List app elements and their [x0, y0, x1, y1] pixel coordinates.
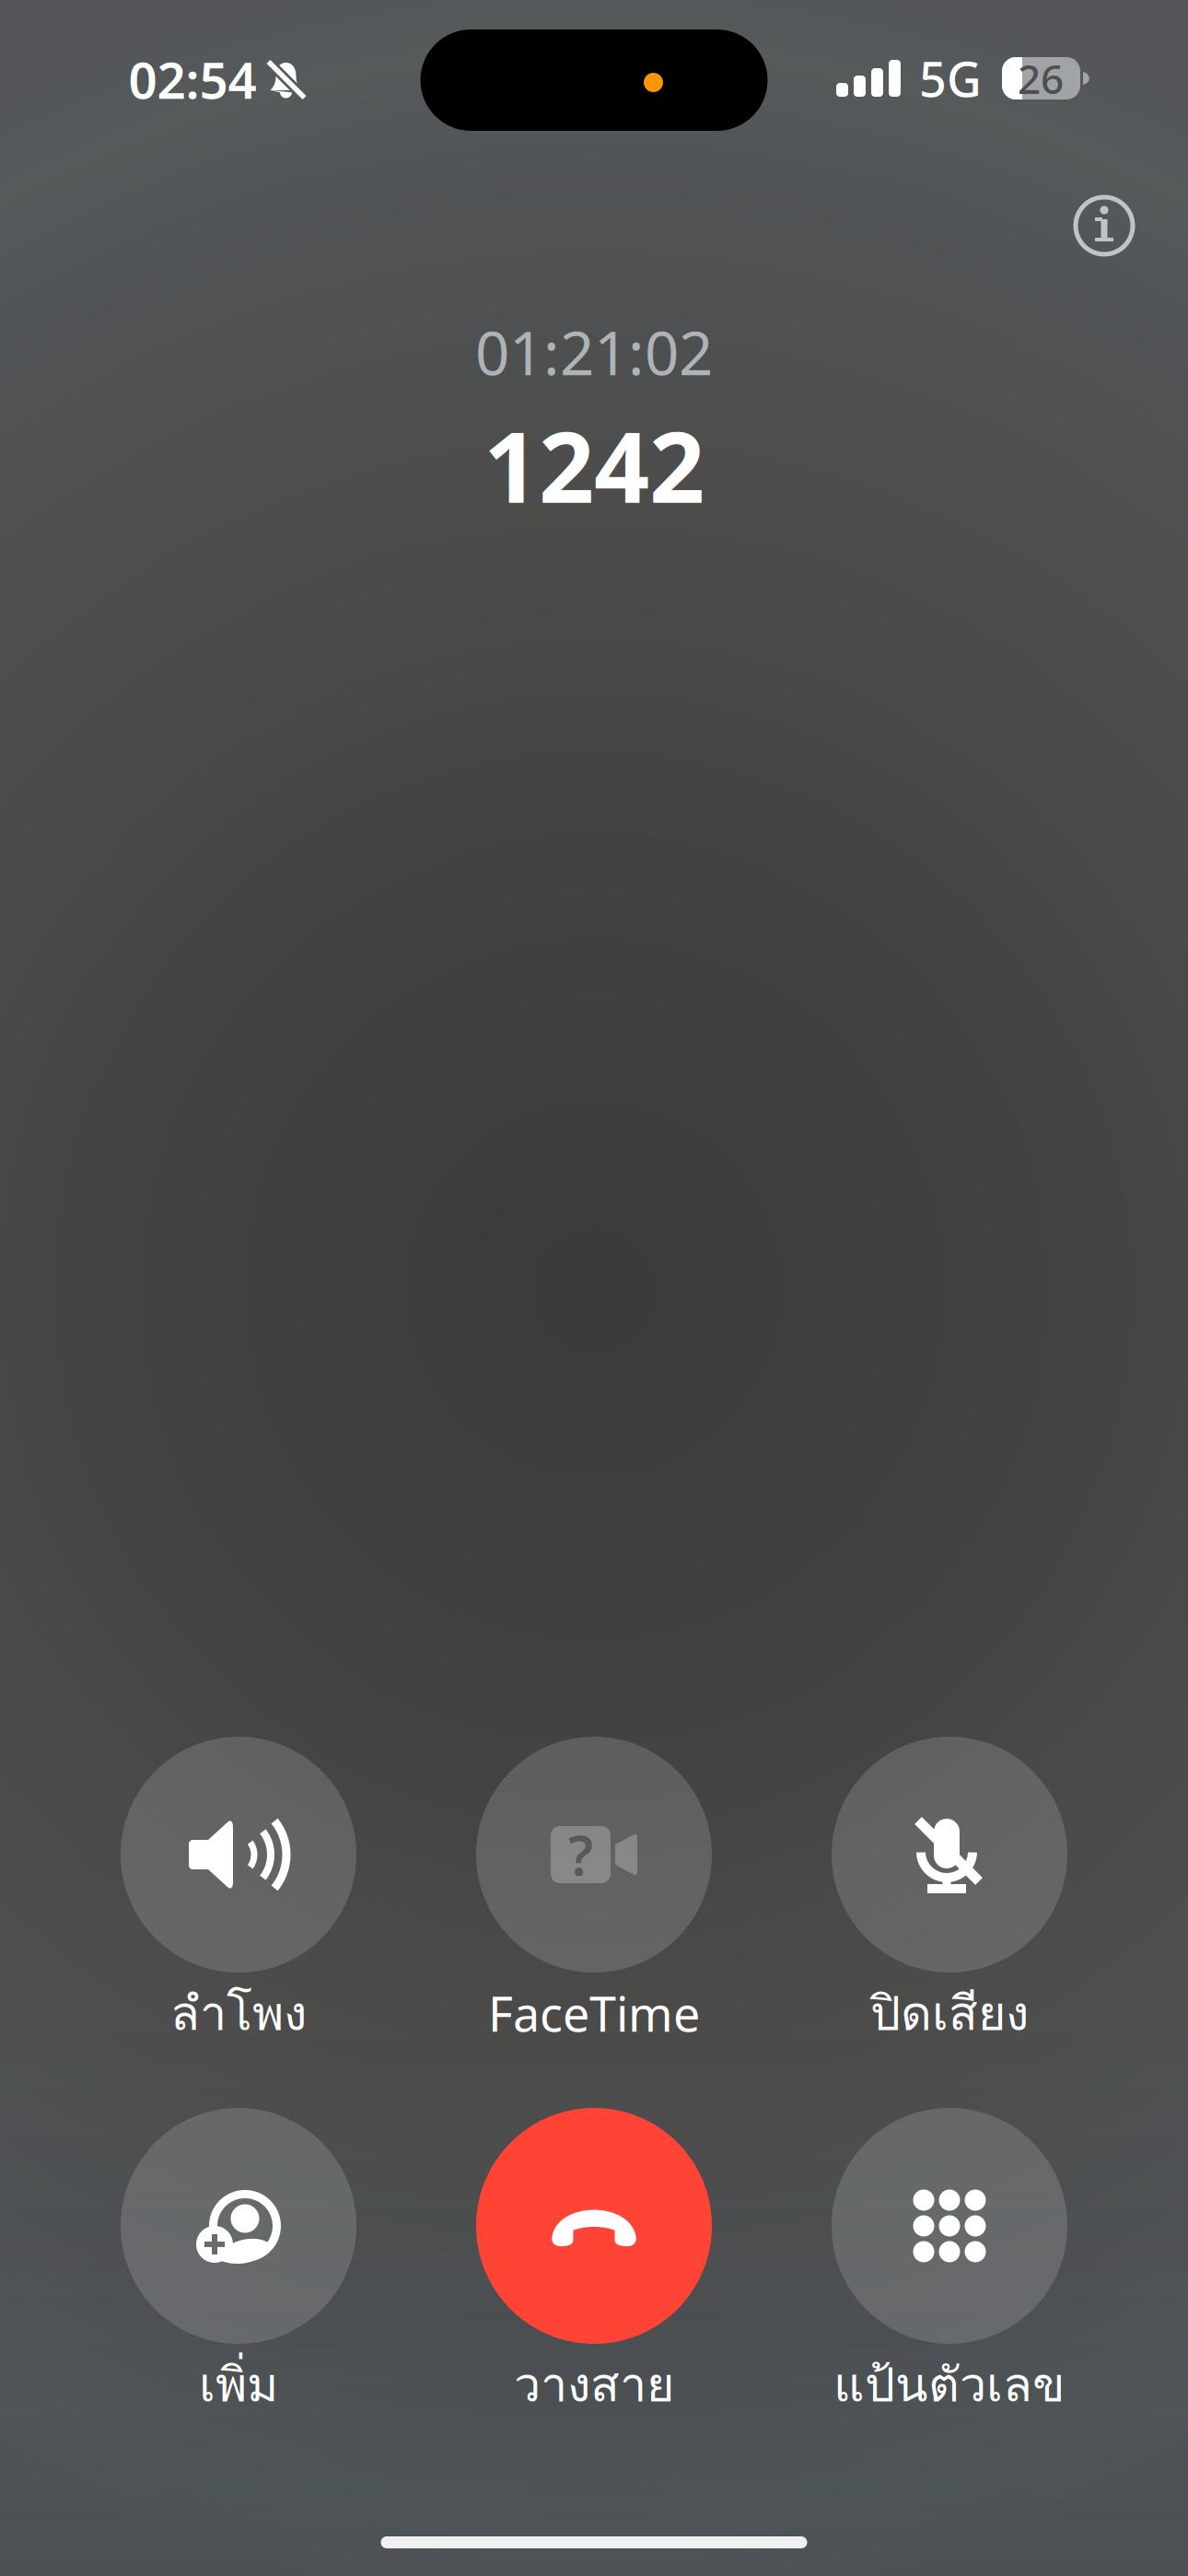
staticText: 01:21:02 [475, 312, 713, 392]
staticText: ? [568, 1819, 593, 1890]
staticText: 1242 [483, 401, 705, 530]
staticText: FaceTime [488, 1981, 700, 2045]
staticText: 26 [1018, 51, 1064, 105]
button[interactable]: เพิ่ม [61, 2112, 416, 2411]
staticText: ปิดเสียง [870, 1976, 1029, 2050]
button[interactable]: วางสาย [416, 2112, 772, 2411]
button[interactable]: ? [416, 1740, 772, 2040]
staticText: แป้นตัวเลข [833, 2347, 1066, 2421]
staticText: ลำโพง [170, 1976, 307, 2050]
staticText: 5G [919, 47, 982, 110]
button[interactable]: แป้นตัวเลข [772, 2112, 1127, 2411]
staticText: วางสาย [514, 2347, 674, 2421]
button[interactable]: Call info [1054, 175, 1155, 276]
button[interactable]: ลำโพง [61, 1740, 416, 2040]
staticText: เพิ่ม [199, 2347, 278, 2421]
staticText: 02:54 [128, 46, 256, 113]
button[interactable]: ปิดเสียง [772, 1740, 1127, 2040]
